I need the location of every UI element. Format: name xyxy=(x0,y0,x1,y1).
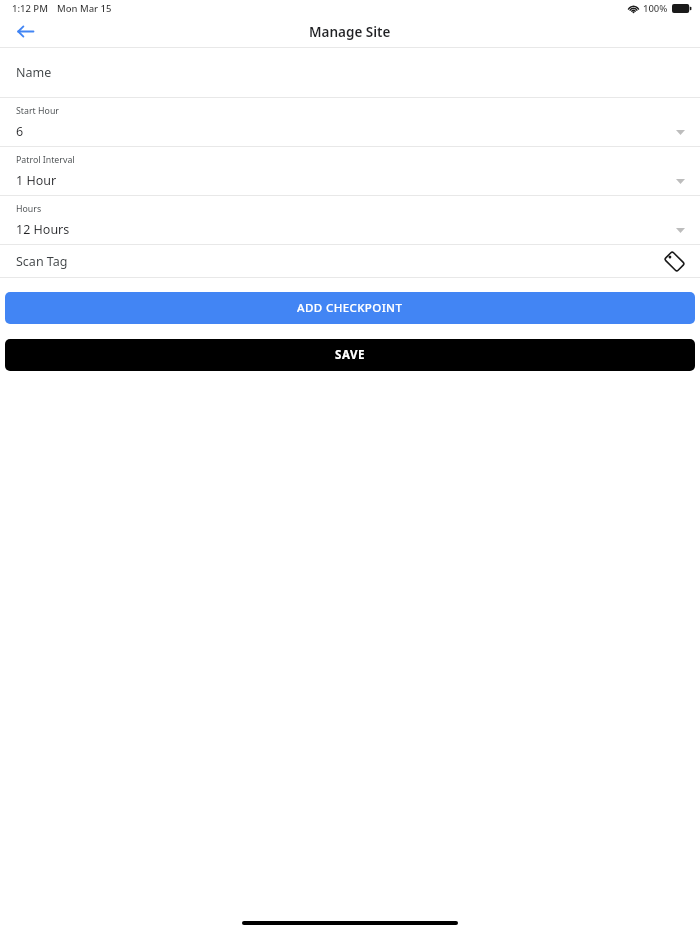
button[interactable]: Scan Tag xyxy=(0,245,700,277)
staticText: Mon Mar 15 xyxy=(57,2,112,15)
button[interactable]: Hours xyxy=(0,196,700,244)
button[interactable]: Patrol Interval xyxy=(0,147,700,195)
staticText: Manage Site xyxy=(309,23,391,41)
staticText: Scan Tag xyxy=(16,253,68,270)
button[interactable]: Back xyxy=(8,16,42,47)
staticText: Hours xyxy=(16,203,42,215)
other: Scan Tag xyxy=(662,249,686,273)
staticText: Patrol Interval xyxy=(16,154,75,166)
staticText: 1:12 PM xyxy=(12,2,48,15)
staticText: 1 Hour xyxy=(16,172,57,189)
staticText: 6 xyxy=(16,123,24,140)
staticText: SAVE xyxy=(335,347,366,363)
button[interactable]: Start Hour xyxy=(0,98,700,146)
button[interactable]: SAVE xyxy=(5,339,695,371)
staticText: 12 Hours xyxy=(16,221,70,238)
staticText: Start Hour xyxy=(16,105,59,117)
staticText: ADD CHECKPOINT xyxy=(297,300,403,316)
button[interactable]: ADD CHECKPOINT xyxy=(5,292,695,324)
staticText: 100% xyxy=(643,2,668,15)
staticText: Name xyxy=(16,64,52,81)
button[interactable]: Name xyxy=(0,48,700,97)
